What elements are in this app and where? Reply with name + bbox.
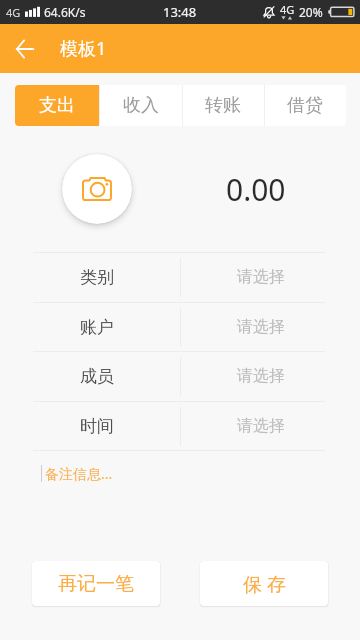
staticText: 请选择 (237, 416, 285, 436)
staticText: 借贷 (287, 94, 323, 117)
button[interactable]: 再记一笔 (32, 561, 160, 606)
staticText: 时间 (80, 416, 114, 437)
staticText: 模板1 (60, 36, 107, 61)
button[interactable]: 收入 (99, 85, 182, 126)
staticText: 类别 (80, 267, 114, 288)
staticText: 请选择 (237, 366, 285, 386)
staticText: 账户 (80, 317, 114, 338)
button[interactable]: 备注信息... (41, 464, 325, 482)
staticText: 20% (299, 4, 323, 20)
staticText: 请选择 (237, 267, 285, 287)
button[interactable]: Back (1, 25, 49, 73)
button[interactable]: 支出 (15, 85, 99, 126)
staticText: 请选择 (237, 317, 285, 337)
staticText: 备注信息... (45, 464, 113, 482)
button[interactable]: 转账 (182, 85, 264, 126)
staticText: 再记一笔 (58, 572, 134, 596)
button[interactable]: 账户 (33, 302, 325, 352)
button[interactable]: 借贷 (264, 85, 346, 126)
staticText: 13:48 (163, 3, 197, 21)
staticText: 4G (280, 2, 295, 17)
staticText: 转账 (205, 94, 241, 117)
staticText: 成员 (80, 366, 114, 387)
staticText: 支出 (39, 94, 75, 117)
staticText: 保 存 (243, 571, 286, 597)
button[interactable]: 类别 (33, 252, 325, 302)
staticText: 0.00 (226, 169, 286, 210)
button[interactable]: 0.00 (160, 154, 325, 224)
staticText: 收入 (123, 94, 159, 117)
button[interactable]: Add photo (62, 154, 132, 224)
button[interactable]: 时间 (33, 401, 325, 451)
button[interactable]: 成员 (33, 351, 325, 401)
staticText: 64.6K/s (44, 4, 86, 20)
staticText: 4G (6, 5, 21, 20)
button[interactable]: 保 存 (200, 561, 328, 606)
